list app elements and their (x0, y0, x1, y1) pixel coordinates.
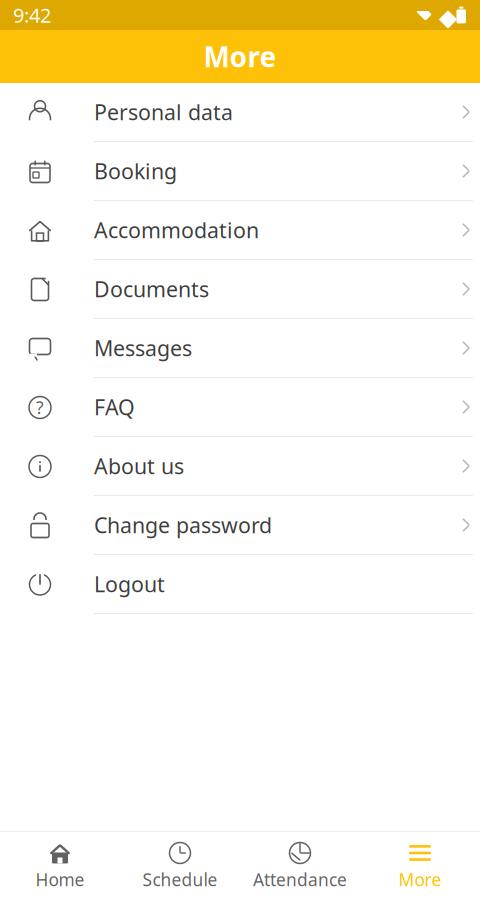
staticText: Change password (94, 511, 272, 539)
staticText: Attendance (253, 868, 347, 891)
button[interactable]: Messages (0, 319, 480, 378)
button[interactable]: Logout (0, 555, 480, 614)
staticText: More (398, 868, 441, 891)
button[interactable]: Schedule (120, 835, 240, 897)
button[interactable]: More (360, 835, 480, 897)
staticText: Schedule (142, 868, 217, 891)
staticText: Personal data (94, 98, 233, 126)
staticText: FAQ (94, 393, 135, 421)
staticText: Logout (94, 570, 165, 598)
staticText: Home (35, 868, 84, 891)
button[interactable]: ? (0, 378, 480, 437)
button[interactable]: Booking (0, 142, 480, 201)
button[interactable]: Home (0, 835, 120, 897)
button[interactable]: Documents (0, 260, 480, 319)
staticText: Messages (94, 334, 192, 362)
button[interactable]: Personal data (0, 83, 480, 142)
button[interactable]: Attendance (240, 835, 360, 897)
button[interactable]: Accommodation (0, 201, 480, 260)
button[interactable]: About us (0, 437, 480, 496)
button[interactable]: Change password (0, 496, 480, 555)
staticText: Booking (94, 157, 177, 185)
staticText: More (203, 38, 276, 75)
staticText: About us (94, 452, 184, 480)
staticText: 9:42 (13, 2, 51, 28)
staticText: Documents (94, 275, 209, 303)
staticText: Accommodation (94, 216, 259, 244)
staticText: ? (36, 396, 44, 419)
